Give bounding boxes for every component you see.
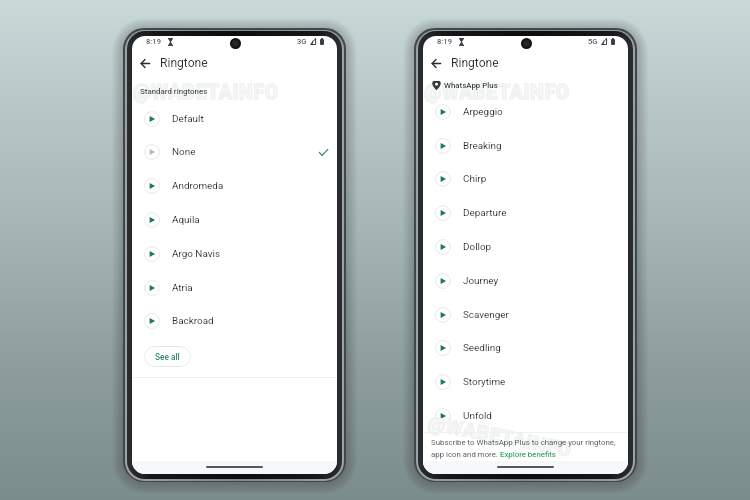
staticText: Departure (463, 207, 507, 219)
button[interactable]: Backroad (132, 304, 337, 338)
staticText: @WABETAINFO (424, 81, 570, 104)
button[interactable]: Departure (423, 196, 628, 230)
button[interactable]: Arpeggio (423, 95, 628, 129)
button[interactable]: See all (144, 346, 191, 367)
staticText: Default (172, 113, 204, 125)
staticText: Breaking (463, 140, 502, 152)
button[interactable]: Breaking (423, 129, 628, 163)
staticText: Seedling (463, 342, 501, 354)
button[interactable]: Explore benefits (500, 450, 556, 459)
staticText: Unfold (463, 410, 492, 422)
staticText: Storytime (463, 376, 506, 388)
staticText: Aquila (172, 214, 200, 226)
staticText: @WABETAINFO (426, 411, 574, 462)
button[interactable]: Chirp (423, 162, 628, 196)
button[interactable]: Seedling (423, 331, 628, 365)
button[interactable]: None (132, 135, 337, 169)
button[interactable]: Scavenger (423, 298, 628, 332)
staticText: 3G (297, 37, 307, 46)
staticText: app icon and more. (431, 450, 500, 459)
staticText: Ringtone (451, 56, 499, 70)
button[interactable]: Dollop (423, 230, 628, 264)
button[interactable]: Andromeda (132, 169, 337, 203)
staticText: Dollop (463, 241, 492, 253)
staticText: None (172, 146, 196, 158)
button[interactable]: Unfold (423, 399, 628, 433)
staticText: Subscribe to WhatsApp Plus to change you… (431, 438, 616, 447)
staticText: @WABETAINFO (133, 81, 279, 104)
staticText: Journey (463, 275, 499, 287)
button[interactable]: Aquila (132, 203, 337, 237)
button[interactable]: Argo Navis (132, 237, 337, 271)
staticText: 8:19 (146, 37, 161, 46)
staticText: See all (155, 352, 180, 362)
staticText: Chirp (463, 173, 487, 185)
button[interactable]: Back (134, 52, 156, 74)
button[interactable]: Back (425, 52, 447, 74)
button[interactable]: Journey (423, 264, 628, 298)
staticText: Backroad (172, 315, 214, 327)
button[interactable]: Default (132, 102, 337, 136)
button[interactable]: Atria (132, 271, 337, 305)
staticText: @WABETAINFO (426, 411, 574, 462)
staticText: Andromeda (172, 180, 224, 192)
staticText: Ringtone (160, 56, 208, 70)
staticText: @WABETAINFO (133, 81, 279, 104)
staticText: @WABETAINFO (424, 81, 570, 104)
staticText: Argo Navis (172, 248, 221, 260)
staticText: Standard ringtones (140, 87, 208, 96)
button[interactable]: Storytime (423, 365, 628, 399)
staticText: 8:19 (437, 37, 452, 46)
staticText: Arpeggio (463, 106, 503, 118)
staticText: Scavenger (463, 309, 509, 321)
staticText: Atria (172, 282, 193, 294)
staticText: 5G (588, 37, 598, 46)
staticText: WhatsApp Plus (444, 81, 498, 90)
